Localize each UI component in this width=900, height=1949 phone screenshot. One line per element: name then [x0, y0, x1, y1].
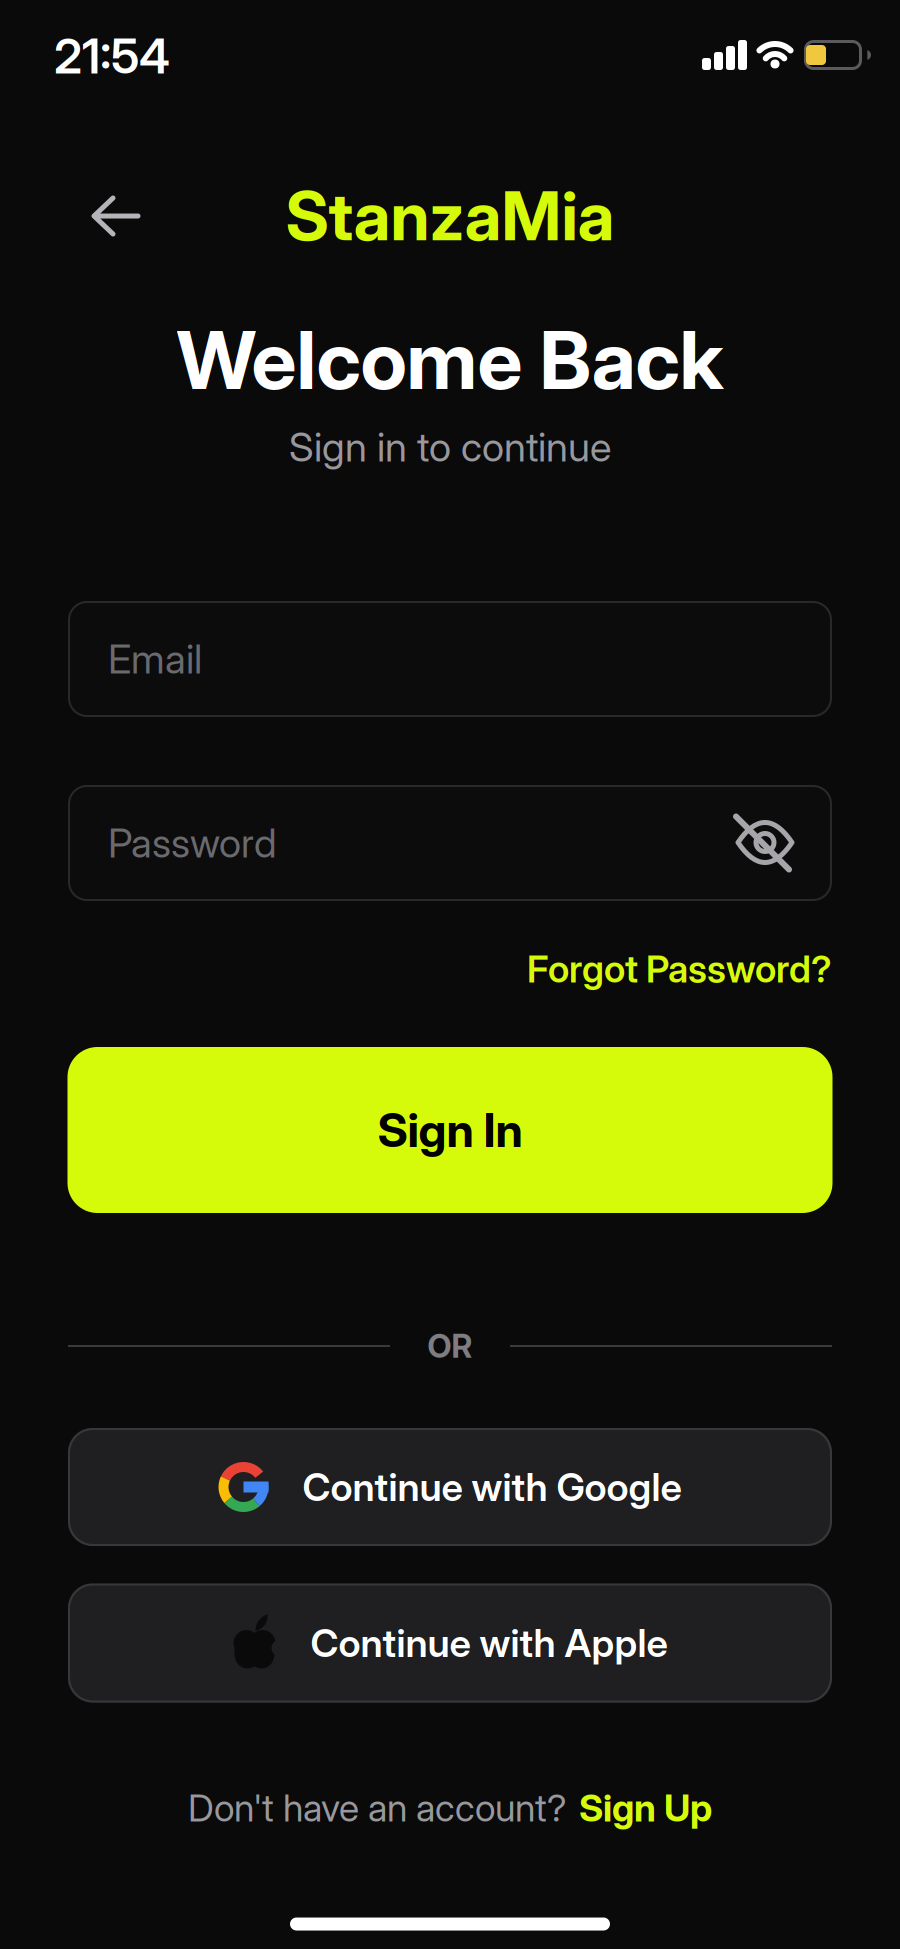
button[interactable]: Show password — [717, 794, 813, 890]
button[interactable]: Continue with Apple — [68, 1583, 832, 1702]
staticText: Welcome Back — [176, 313, 723, 407]
staticText: Sign Up — [579, 1786, 712, 1830]
staticText: Continue with Apple — [310, 1620, 667, 1666]
staticText: Email — [108, 635, 202, 683]
button[interactable]: Continue with Google — [68, 1428, 832, 1546]
staticText: Password — [108, 819, 277, 867]
button[interactable]: Forgot Password? — [527, 947, 832, 991]
staticText: StanzaMia — [285, 177, 614, 255]
staticText: Sign In — [377, 1102, 522, 1158]
staticText: Don't have an account? — [188, 1786, 567, 1830]
staticText: Forgot Password? — [527, 947, 832, 991]
staticText: OR — [427, 1327, 472, 1365]
button[interactable]: Sign In — [67, 1047, 832, 1213]
staticText: 21:54 — [54, 28, 170, 84]
staticText: Continue with Google — [302, 1464, 681, 1510]
staticText: Sign in to continue — [289, 423, 611, 471]
button[interactable]: Sign Up — [579, 1786, 712, 1830]
button[interactable]: Back — [75, 176, 155, 256]
